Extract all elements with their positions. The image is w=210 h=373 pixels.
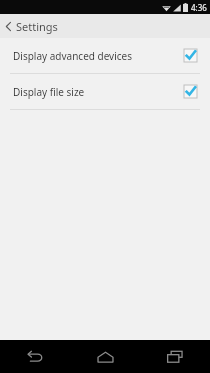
button[interactable]: Back: [0, 340, 70, 373]
button[interactable]: Recent apps: [140, 340, 210, 373]
other: Checked: [184, 85, 197, 98]
staticText: Display file size: [13, 85, 184, 99]
staticText: Settings: [16, 19, 58, 34]
button[interactable]: Display file size: [0, 74, 210, 109]
other: Checked: [184, 49, 197, 62]
button[interactable]: Display advanced devices: [0, 38, 210, 73]
button[interactable]: Home: [70, 340, 140, 373]
button[interactable]: Back: [0, 14, 210, 38]
staticText: 4:36: [191, 2, 207, 13]
staticText: Display advanced devices: [13, 49, 184, 63]
other: Back: [4, 21, 13, 32]
